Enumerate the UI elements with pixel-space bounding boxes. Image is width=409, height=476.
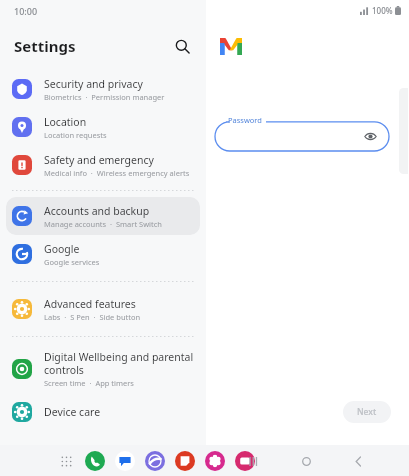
button[interactable]: Camera <box>235 451 255 471</box>
staticText: Location <box>44 115 87 129</box>
staticText: Google services <box>44 257 100 267</box>
button[interactable]: Photos <box>205 451 225 471</box>
button[interactable]: Accounts and backup <box>6 197 200 235</box>
staticText: Safety and emergency <box>44 153 154 167</box>
button[interactable]: Messages <box>115 451 135 471</box>
staticText: Password <box>228 115 262 125</box>
staticText: Digital Wellbeing and parental controls <box>44 350 194 377</box>
button[interactable]: Google <box>6 235 200 273</box>
staticText: Biometrics · Permission manager <box>44 92 165 102</box>
button[interactable]: Security and privacy <box>6 70 200 108</box>
button[interactable]: Notes <box>175 451 195 471</box>
button[interactable]: Advanced features <box>6 290 200 328</box>
button[interactable]: Safety and emergency <box>6 146 200 184</box>
staticText: Device care <box>44 405 101 419</box>
button[interactable]: Internet <box>145 451 165 471</box>
staticText: 10:00 <box>14 5 38 17</box>
button[interactable]: Digital Wellbeing and parental controls <box>6 345 200 393</box>
staticText: Accounts and backup <box>44 204 150 218</box>
staticText: Location requests <box>44 130 107 140</box>
button[interactable]: Home <box>295 450 317 472</box>
button[interactable]: Apps <box>57 452 75 470</box>
staticText: Settings <box>14 36 76 56</box>
button[interactable]: Back <box>347 450 369 472</box>
staticText: Screen time · App timers <box>44 378 134 388</box>
button[interactable]: Recents <box>243 450 265 472</box>
staticText: Security and privacy <box>44 77 143 91</box>
button[interactable]: Search <box>168 32 196 60</box>
button[interactable]: Device care <box>6 393 200 431</box>
button[interactable]: Location <box>6 108 200 146</box>
staticText: Labs · S Pen · Side button <box>44 312 141 322</box>
button[interactable]: Show password <box>360 126 380 146</box>
staticText: 100% <box>372 5 393 16</box>
button[interactable]: Phone <box>85 451 105 471</box>
staticText: Next <box>357 406 377 418</box>
staticText: Medical info · Wireless emergency alerts <box>44 168 190 178</box>
button[interactable]: Next <box>343 401 391 423</box>
staticText: Advanced features <box>44 297 136 311</box>
staticText: Manage accounts · Smart Switch <box>44 219 162 229</box>
staticText: Google <box>44 242 80 256</box>
